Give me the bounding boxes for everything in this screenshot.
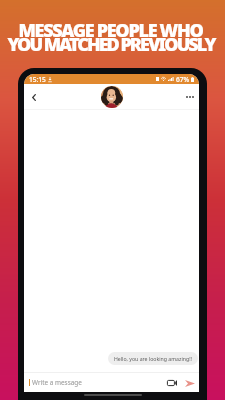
staticText: Write a message xyxy=(32,378,82,387)
staticText: Hello, you are looking amazing!! xyxy=(114,355,192,362)
staticText: 67% xyxy=(176,75,190,84)
button[interactable]: Send xyxy=(182,375,198,391)
button[interactable]: Profile photo xyxy=(101,86,123,108)
staticText: YOU MATCHED PREVIOUSLY xyxy=(7,32,215,57)
button[interactable]: Video call xyxy=(164,375,180,391)
staticText: MESSAGE PEOPLE WHO xyxy=(18,18,203,43)
staticText: 15:15 xyxy=(29,75,46,84)
button[interactable]: Write a message xyxy=(24,373,164,392)
button[interactable]: More options xyxy=(181,88,199,106)
button[interactable]: Back xyxy=(25,88,43,106)
